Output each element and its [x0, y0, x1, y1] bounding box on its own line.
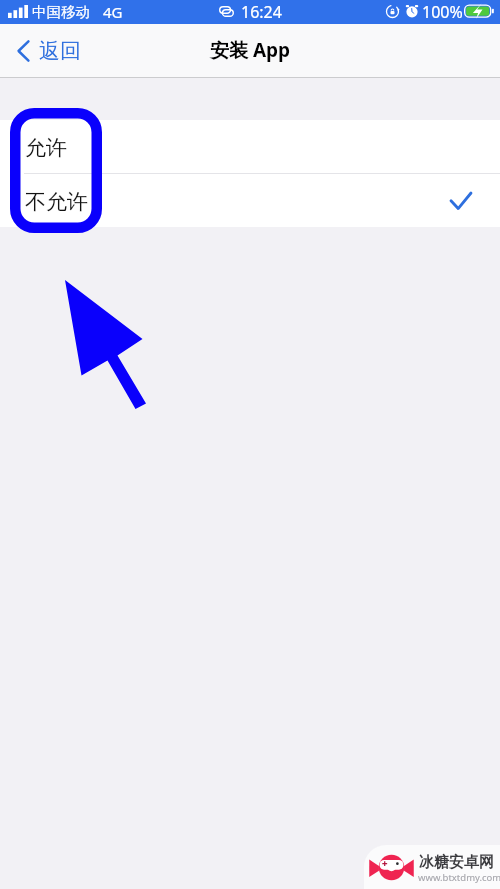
staticText: 4G — [103, 2, 123, 22]
button[interactable]: 返回 Back — [13, 34, 85, 68]
staticText: www.btxtdmy.com — [418, 871, 500, 884]
staticText: 冰糖安卓网 — [419, 853, 494, 872]
staticText: 返回 — [39, 38, 81, 64]
staticText: 16:24 — [241, 1, 282, 23]
button[interactable]: 允许 — [0, 120, 500, 173]
staticText: 100% — [422, 1, 463, 23]
staticText: 不允许 — [25, 189, 88, 215]
button[interactable]: 不允许 — [0, 174, 500, 227]
staticText: 中国移动 — [32, 3, 90, 21]
staticText: 安装 App — [210, 37, 291, 63]
staticText: 允许 — [25, 135, 67, 161]
